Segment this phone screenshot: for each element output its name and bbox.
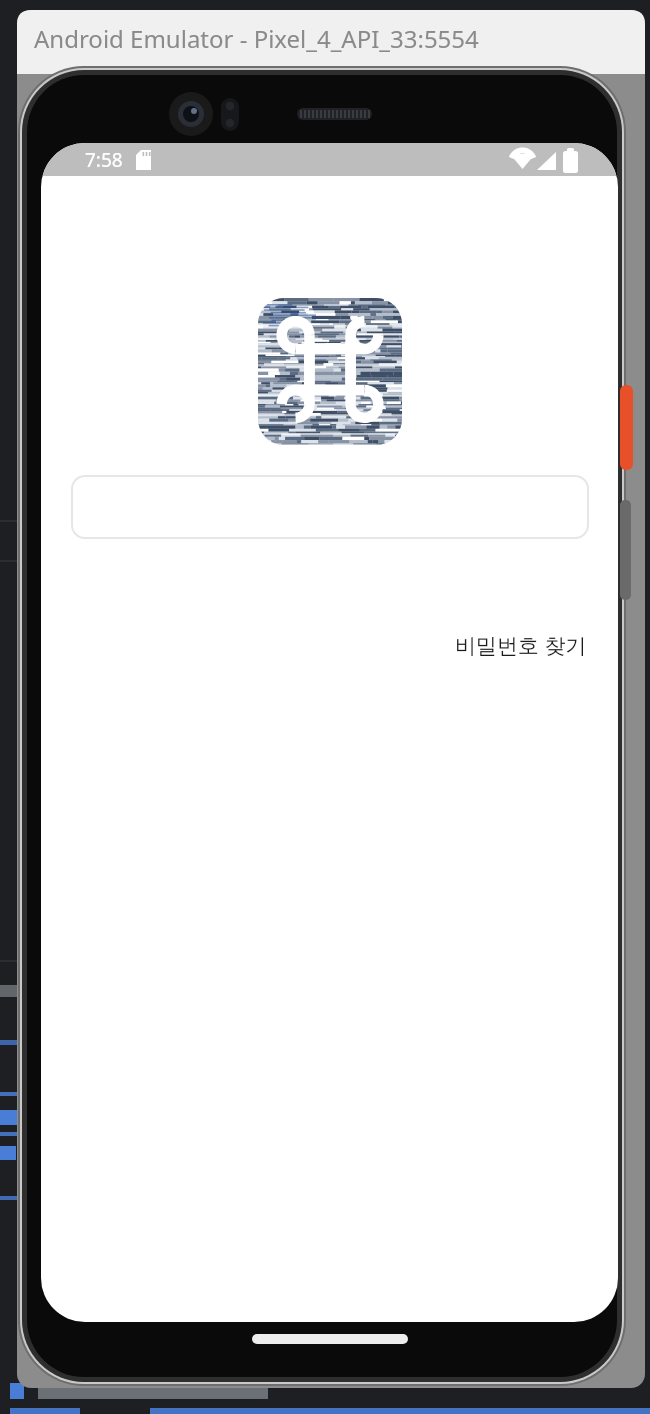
button[interactable]: App logo (258, 298, 402, 445)
button[interactable]: Password input field (72, 476, 588, 538)
button[interactable]: 비밀번호 찾기 (455, 631, 618, 667)
staticText: 비밀번호 찾기 (455, 631, 587, 660)
staticText: 7:58 (85, 147, 123, 173)
staticText: Android Emulator - Pixel_4_API_33:5554 (34, 22, 479, 55)
